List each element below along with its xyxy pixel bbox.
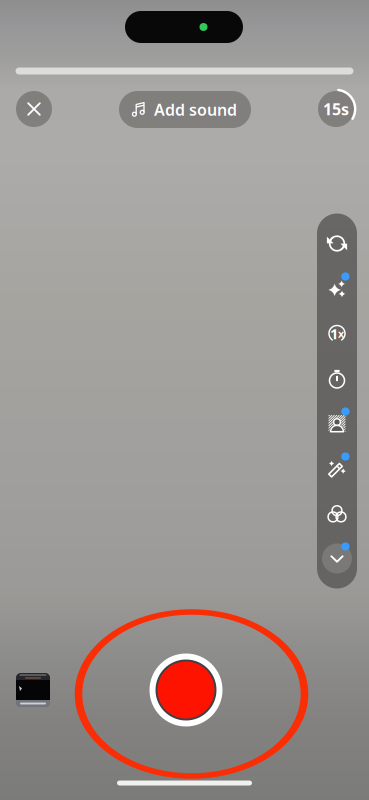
button[interactable]: Add sound: [119, 91, 251, 128]
button[interactable]: Start recording: [148, 652, 224, 728]
staticText: Add sound: [154, 99, 237, 120]
button[interactable]: More options: [320, 541, 354, 575]
button[interactable]: Flip camera: [320, 226, 354, 260]
button[interactable]: Speed: [320, 316, 354, 350]
button[interactable]: Green screen: [320, 406, 354, 440]
staticText: 15s: [323, 98, 349, 120]
staticText: 1: [330, 324, 338, 343]
button[interactable]: Upload from gallery: [16, 673, 50, 707]
button[interactable]: Filters: [320, 496, 354, 530]
button[interactable]: Close: [16, 91, 52, 127]
button[interactable]: Timer: [320, 361, 354, 395]
button[interactable]: Enhance: [320, 271, 354, 305]
button[interactable]: Duration 15 seconds: [315, 88, 357, 130]
staticText: x: [338, 326, 344, 341]
button[interactable]: Beautify: [320, 451, 354, 485]
